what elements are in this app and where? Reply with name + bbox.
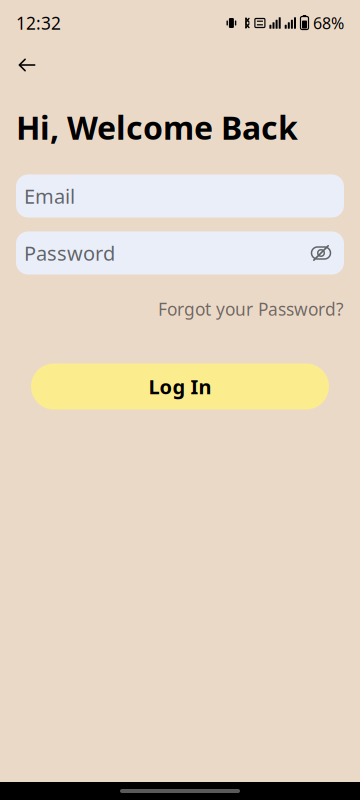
button[interactable]: Show password [306,238,336,268]
staticText: Forgot your Password? [158,297,344,320]
button[interactable]: Log In [31,363,329,409]
staticText: 12:32 [16,11,61,34]
staticText: Password [24,240,115,266]
staticText: 68% [313,12,344,34]
staticText: Email [24,183,75,209]
staticText: Hi, Welcome Back [16,106,298,148]
button[interactable]: Forgot your Password? [158,292,344,325]
button[interactable]: Back [7,45,47,85]
staticText: Log In [148,373,211,400]
